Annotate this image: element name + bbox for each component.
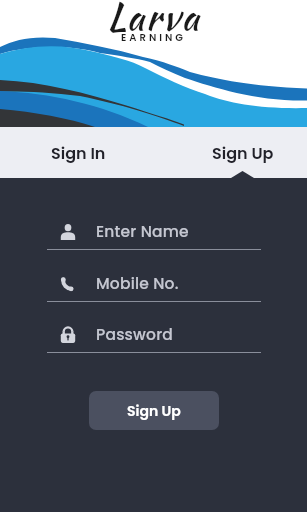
- staticText: Mobile No.: [96, 273, 179, 295]
- staticText: Sign In: [51, 142, 106, 164]
- button[interactable]: Password: [47, 318, 261, 353]
- button[interactable]: Sign Up: [89, 391, 219, 430]
- button[interactable]: Enter Name: [47, 215, 261, 250]
- button[interactable]: Mobile No.: [47, 267, 261, 302]
- button[interactable]: Sign Up: [153, 127, 307, 178]
- staticText: Sign Up: [127, 401, 181, 421]
- button[interactable]: Sign In: [0, 127, 153, 178]
- staticText: Sign Up: [212, 142, 274, 164]
- staticText: Enter Name: [96, 221, 189, 243]
- staticText: Larva: [107, 0, 201, 44]
- staticText: Password: [96, 324, 174, 346]
- staticText: EARNING: [121, 30, 187, 44]
